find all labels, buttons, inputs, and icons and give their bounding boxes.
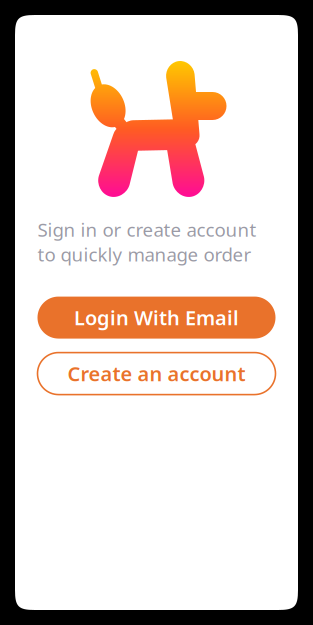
button[interactable]: Create an account <box>37 353 275 395</box>
staticText: Sign in or create account to quickly man… <box>37 217 256 267</box>
button[interactable]: Login With Email <box>37 297 275 339</box>
staticText: Login With Email <box>74 304 239 331</box>
staticText: Create an account <box>67 360 245 387</box>
